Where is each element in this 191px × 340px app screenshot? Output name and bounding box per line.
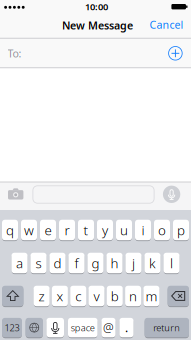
button[interactable]: z bbox=[34, 286, 50, 306]
button[interactable]: w bbox=[21, 220, 37, 240]
staticText: z bbox=[39, 287, 45, 305]
staticText: u bbox=[120, 221, 128, 239]
button[interactable]: r bbox=[59, 220, 75, 240]
button[interactable]: n bbox=[125, 286, 141, 306]
staticText: j bbox=[132, 254, 135, 272]
staticText: y bbox=[102, 221, 108, 239]
button[interactable]: l bbox=[163, 253, 179, 273]
staticText: o bbox=[158, 221, 166, 239]
staticText: @ bbox=[103, 320, 114, 335]
staticText: g bbox=[91, 254, 99, 272]
button[interactable] bbox=[163, 186, 180, 203]
staticText: i bbox=[141, 221, 144, 239]
button[interactable]: c bbox=[70, 286, 86, 306]
button[interactable]: k bbox=[144, 253, 160, 273]
button[interactable] bbox=[7, 187, 24, 200]
staticText: 10:00 bbox=[85, 0, 108, 13]
button[interactable]: @ bbox=[101, 318, 115, 337]
button[interactable]: h bbox=[106, 253, 122, 273]
staticText: q bbox=[6, 221, 14, 239]
staticText: 123 bbox=[4, 321, 19, 334]
staticText: m bbox=[145, 287, 157, 305]
button[interactable]: return bbox=[144, 318, 189, 337]
button[interactable]: j bbox=[125, 253, 141, 273]
button[interactable] bbox=[167, 286, 189, 306]
button[interactable] bbox=[46, 318, 64, 337]
button[interactable]: d bbox=[49, 253, 65, 273]
staticText: l bbox=[170, 254, 173, 272]
staticText: v bbox=[93, 287, 99, 305]
button[interactable]: q bbox=[2, 220, 18, 240]
staticText: n bbox=[129, 287, 137, 305]
staticText: h bbox=[110, 254, 118, 272]
staticText: b bbox=[111, 287, 119, 305]
staticText: s bbox=[35, 254, 41, 272]
staticText: c bbox=[75, 287, 81, 305]
button[interactable] bbox=[2, 286, 23, 306]
button[interactable]: u bbox=[116, 220, 132, 240]
button[interactable]: p bbox=[173, 220, 189, 240]
staticText: e bbox=[44, 221, 51, 239]
staticText: . bbox=[125, 320, 128, 335]
button[interactable]: i bbox=[135, 220, 151, 240]
button[interactable] bbox=[168, 46, 183, 61]
button[interactable]: . bbox=[119, 318, 133, 337]
staticText: Cancel bbox=[149, 17, 183, 32]
button[interactable]: o bbox=[154, 220, 170, 240]
button[interactable]: t bbox=[78, 220, 94, 240]
staticText: p bbox=[177, 221, 185, 239]
button[interactable]: e bbox=[40, 220, 56, 240]
button[interactable]: Cancel bbox=[143, 17, 189, 33]
staticText: To: bbox=[7, 46, 21, 60]
staticText: space bbox=[71, 321, 95, 334]
staticText: a bbox=[16, 254, 23, 272]
button[interactable]: x bbox=[52, 286, 68, 306]
button[interactable]: g bbox=[87, 253, 103, 273]
staticText: d bbox=[53, 254, 61, 272]
staticText: New Message bbox=[62, 18, 133, 32]
button[interactable]: y bbox=[97, 220, 113, 240]
button[interactable]: s bbox=[30, 253, 46, 273]
button[interactable]: f bbox=[68, 253, 84, 273]
staticText: return bbox=[153, 321, 180, 334]
staticText: t bbox=[83, 221, 88, 239]
button[interactable]: v bbox=[88, 286, 104, 306]
button[interactable]: space bbox=[68, 318, 97, 337]
button[interactable]: a bbox=[11, 253, 27, 273]
button[interactable] bbox=[25, 318, 43, 337]
staticText: r bbox=[64, 221, 69, 239]
button[interactable]: 123 bbox=[2, 318, 22, 337]
staticText: w bbox=[24, 221, 34, 239]
staticText: k bbox=[149, 254, 156, 272]
button[interactable]: b bbox=[107, 286, 123, 306]
button[interactable]: m bbox=[143, 286, 159, 306]
staticText: f bbox=[74, 254, 78, 272]
staticText: x bbox=[56, 287, 63, 305]
